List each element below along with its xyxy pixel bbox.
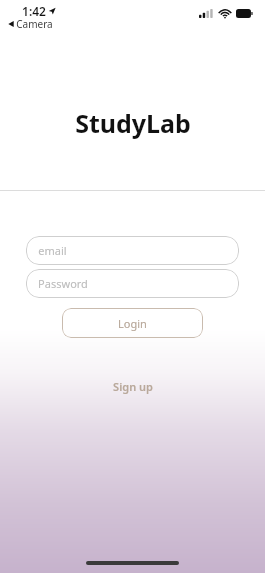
button[interactable]: Password [26,269,239,298]
button[interactable]: Login [62,308,203,338]
staticText: Login [118,316,147,331]
button[interactable]: email [26,236,239,265]
button[interactable]: Back to Camera [8,17,53,31]
staticText: StudyLab [75,106,191,140]
staticText: Password [38,276,88,291]
staticText: email [38,243,67,258]
staticText: Camera [16,17,53,31]
staticText: 1:42 [22,3,46,19]
staticText: Sign up [113,379,153,394]
button[interactable]: Sign up [103,375,163,398]
